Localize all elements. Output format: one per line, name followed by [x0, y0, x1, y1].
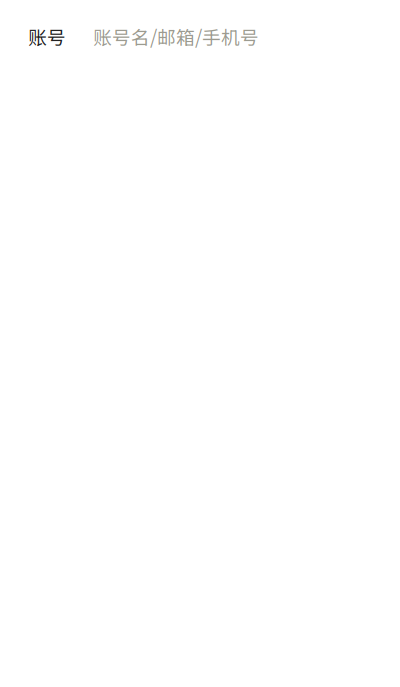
textField[interactable]: 账号名/邮箱/手机号 — [93, 23, 372, 50]
staticText: 账号名/邮箱/手机号 — [93, 23, 259, 50]
staticText: 账号 — [28, 23, 66, 50]
